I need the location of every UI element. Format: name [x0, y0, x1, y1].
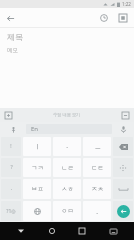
- button[interactable]: ㄴㄹ: [53, 158, 81, 177]
- button[interactable]: Space: [113, 179, 133, 199]
- button[interactable]: ㄱㅋ: [23, 158, 51, 177]
- button[interactable]: En: [26, 124, 112, 134]
- staticText: ·: [66, 143, 68, 151]
- staticText: ㅂㅍ: [31, 185, 44, 193]
- button[interactable]: Enter: [113, 201, 133, 221]
- button[interactable]: Reminder: [94, 8, 114, 28]
- button[interactable]: Voice input: [112, 122, 134, 136]
- staticText: ?: [10, 164, 13, 171]
- staticText: !: [10, 143, 12, 150]
- button[interactable]: Hide: [120, 110, 131, 121]
- staticText: ㄷㅌ: [91, 164, 104, 172]
- button[interactable]: ㅇㅁ: [53, 201, 81, 221]
- button[interactable]: Back: [12, 222, 30, 240]
- button[interactable]: Archive: [114, 8, 131, 28]
- staticText: ㅅㅎ: [61, 185, 74, 193]
- staticText: En: [31, 125, 39, 133]
- button[interactable]: Home: [43, 222, 61, 240]
- button[interactable]: Back: [0, 8, 20, 28]
- staticText: ㅇㅁ: [61, 207, 74, 215]
- button[interactable]: Add: [3, 110, 14, 121]
- button[interactable]: Hide keyboard: [104, 222, 122, 240]
- button[interactable]: ㅣ: [23, 137, 51, 156]
- button[interactable]: ㄷㅌ: [83, 158, 111, 177]
- button[interactable]: Change language: [23, 201, 51, 221]
- staticText: ㅡ: [94, 143, 101, 151]
- staticText: 메모: [7, 47, 18, 54]
- button[interactable]: ?: [1, 158, 21, 177]
- staticText: 수정 내용 보기: [53, 112, 81, 118]
- button[interactable]: Backspace: [113, 137, 133, 156]
- staticText: 제목: [7, 32, 23, 42]
- staticText: 1:22: [122, 1, 131, 7]
- staticText: ?1◎: [6, 208, 16, 215]
- staticText: .: [96, 207, 98, 215]
- staticText: ㅈㅊ: [91, 185, 104, 193]
- button[interactable]: Voice settings: [0, 122, 26, 136]
- button[interactable]: Recents: [73, 222, 91, 240]
- staticText: ㅣ: [34, 143, 41, 151]
- button[interactable]: ㅈㅊ: [83, 179, 111, 199]
- button[interactable]: ㅅㅎ: [53, 179, 81, 199]
- button[interactable]: ㅡ: [83, 137, 111, 156]
- staticText: ㄱㅋ: [31, 164, 44, 172]
- button[interactable]: ?1◎: [1, 201, 21, 221]
- button[interactable]: ㅂㅍ: [23, 179, 51, 199]
- staticText: ㄴㄹ: [61, 164, 74, 172]
- button[interactable]: Arrow keys: [113, 158, 133, 177]
